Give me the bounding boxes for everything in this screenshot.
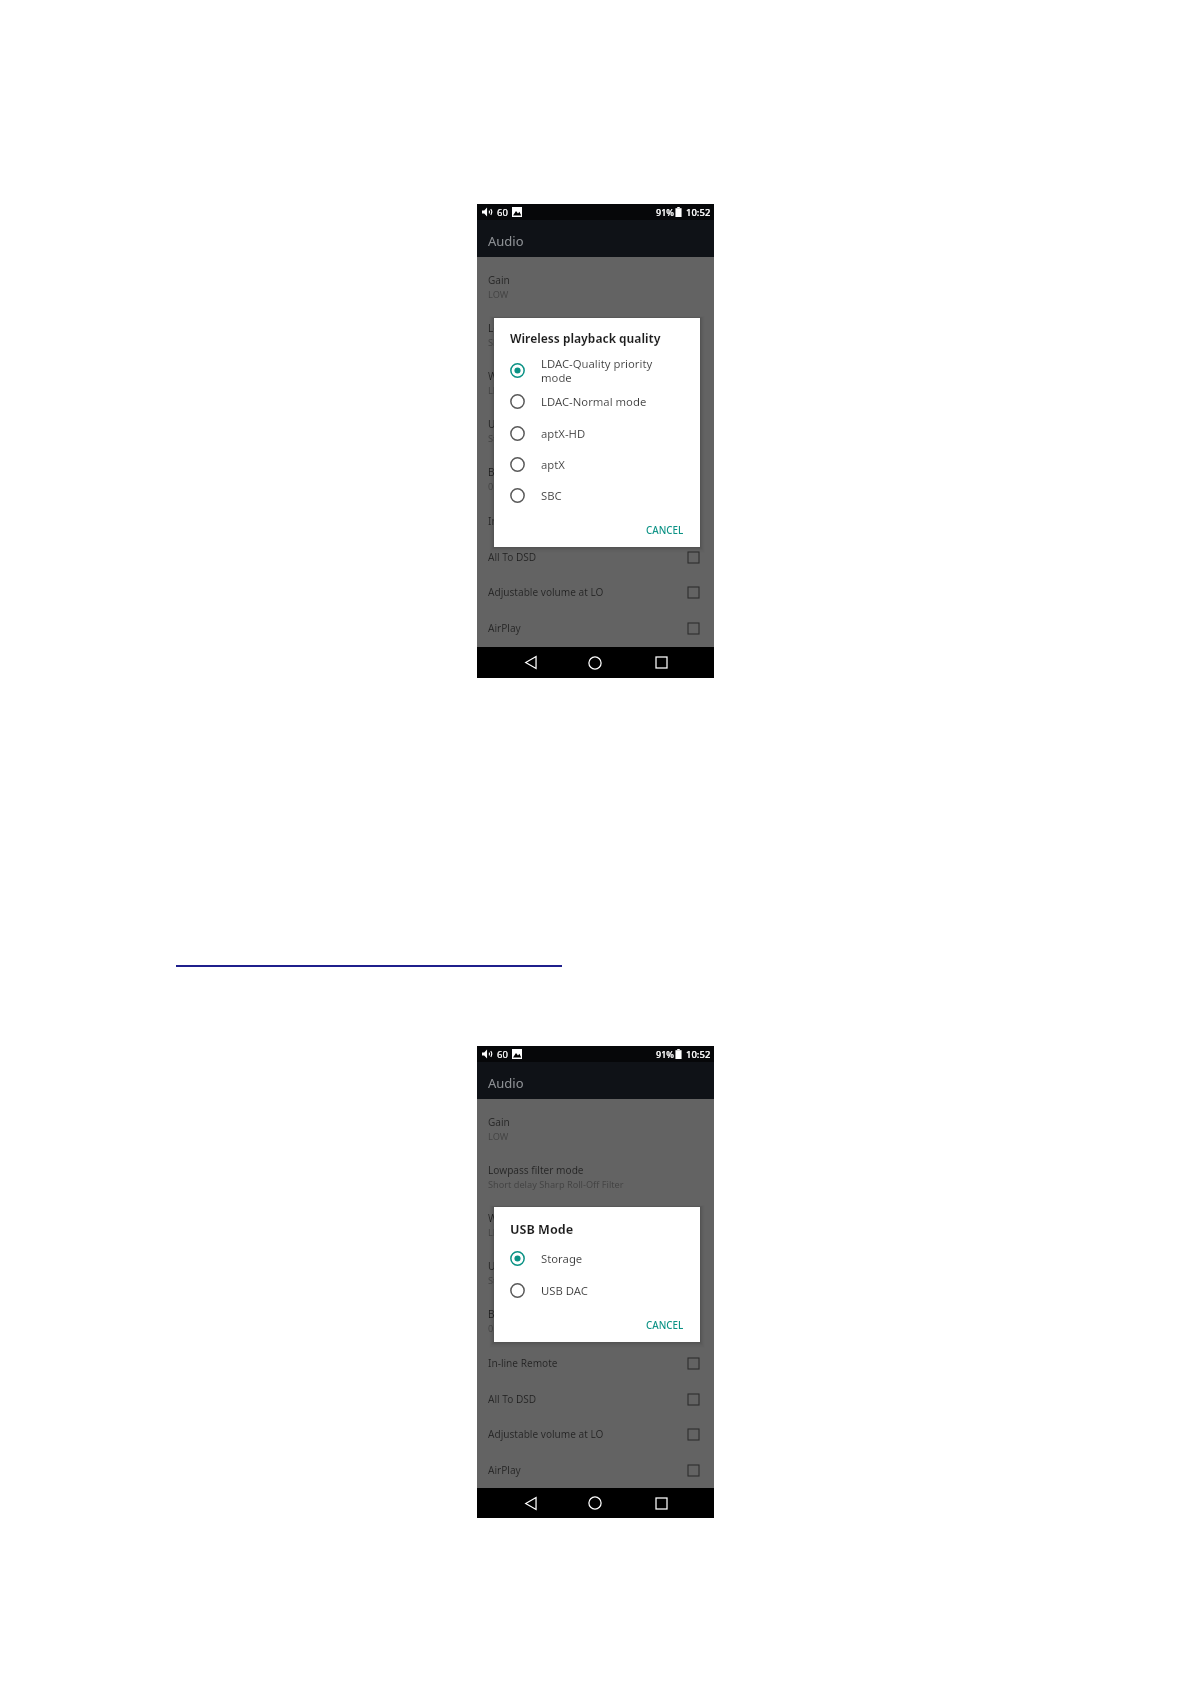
button[interactable]: USB Mode: [477, 1259, 714, 1285]
button[interactable]: Lowpass filter mode: [477, 321, 714, 347]
button[interactable]: aptX: [494, 449, 700, 480]
staticText: 0: [488, 480, 494, 492]
button[interactable]: CANCEL: [642, 1315, 688, 1336]
staticText: USB Mode: [488, 1259, 538, 1273]
staticText: Gain: [488, 273, 510, 287]
button[interactable]: Recents: [648, 1488, 674, 1518]
staticText: aptX-HD: [541, 426, 586, 441]
staticText: Wireless playback quality: [488, 1211, 607, 1225]
staticText: CANCEL: [646, 524, 684, 537]
staticText: LDAC-Quality priority mode: [541, 356, 653, 385]
button[interactable]: Balance: [477, 1307, 714, 1333]
staticText: AirPlay: [488, 621, 521, 635]
button[interactable]: SBC: [494, 480, 700, 511]
staticText: LOW: [488, 1130, 509, 1142]
button[interactable]: Home: [582, 1488, 608, 1518]
button[interactable]: All To DSD: [477, 546, 714, 568]
button[interactable]: Back: [518, 1488, 544, 1518]
button[interactable]: Balance: [477, 465, 714, 491]
staticText: USB DAC: [541, 1283, 588, 1298]
staticText: Balance: [488, 1307, 526, 1321]
staticText: Audio: [488, 1074, 524, 1092]
staticText: LDAC-Quality priority mode: [488, 384, 606, 396]
staticText: Short delay Sharp Roll-Off Filter: [488, 1178, 624, 1190]
staticText: USB Mode: [488, 417, 538, 431]
staticText: 10:52: [686, 206, 711, 219]
staticText: 60: [497, 206, 508, 219]
button[interactable]: Storage: [494, 1242, 700, 1274]
button[interactable]: Wireless playback quality: [477, 1211, 714, 1237]
staticText: AirPlay: [488, 1463, 521, 1477]
button[interactable]: Audio: [477, 220, 714, 257]
staticText: LOW: [488, 288, 509, 300]
staticText: Gain: [488, 1115, 510, 1129]
button[interactable]: AirPlay: [477, 617, 714, 639]
staticText: Wireless playback quality: [488, 369, 607, 383]
button[interactable]: Gain: [477, 1115, 714, 1141]
button[interactable]: CANCEL: [642, 520, 688, 541]
staticText: 60: [497, 1048, 508, 1061]
staticText: 91%: [656, 206, 674, 218]
button[interactable]: AirPlay: [477, 1459, 714, 1481]
staticText: 91%: [656, 1048, 674, 1060]
button[interactable]: LDAC-Quality priority mode: [494, 354, 700, 386]
staticText: Balance: [488, 465, 526, 479]
staticText: 0: [488, 1322, 494, 1334]
staticText: In-line Remote: [488, 1356, 558, 1370]
staticText: Storage: [488, 1274, 522, 1286]
staticText: USB Mode: [510, 1221, 574, 1238]
button[interactable]: Wireless playback quality: [477, 369, 714, 395]
button[interactable]: USB DAC: [494, 1274, 700, 1306]
button[interactable]: Adjustable volume at LO: [477, 581, 714, 603]
button[interactable]: LDAC-Normal mode: [494, 386, 700, 417]
button[interactable]: Recents: [648, 647, 674, 678]
staticText: All To DSD: [488, 550, 537, 564]
staticText: LDAC-Quality priority mode: [488, 1226, 606, 1238]
button[interactable]: aptX-HD: [494, 417, 700, 449]
staticText: SBC: [541, 488, 562, 503]
staticText: Adjustable volume at LO: [488, 1427, 604, 1441]
staticText: Adjustable volume at LO: [488, 585, 604, 599]
button[interactable]: Lowpass filter mode: [477, 1163, 714, 1189]
button[interactable]: Gain: [477, 273, 714, 299]
button[interactable]: Audio: [477, 1062, 714, 1099]
staticText: All To DSD: [488, 1392, 537, 1406]
button[interactable]: Back: [518, 647, 544, 678]
staticText: Storage: [541, 1251, 583, 1266]
staticText: Lowpass filter mode: [488, 1163, 584, 1177]
staticText: LDAC-Normal mode: [541, 394, 647, 409]
staticText: CANCEL: [646, 1319, 684, 1332]
staticText: Audio: [488, 232, 524, 250]
button[interactable]: Home: [582, 647, 608, 678]
button[interactable]: Adjustable volume at LO: [477, 1423, 714, 1445]
staticText: 10:52: [686, 1048, 711, 1061]
staticText: Lowpass filter mode: [488, 321, 584, 335]
staticText: aptX: [541, 457, 565, 472]
button[interactable]: USB Mode: [477, 417, 714, 443]
staticText: In-line Remote: [488, 514, 558, 528]
staticText: Short delay Sharp Roll-Off Filter: [488, 336, 624, 348]
button[interactable]: In-line Remote: [477, 1352, 714, 1374]
staticText: Wireless playback quality: [510, 330, 661, 346]
button[interactable]: In-line Remote: [477, 510, 714, 532]
button[interactable]: All To DSD: [477, 1388, 714, 1410]
staticText: Storage: [488, 432, 522, 444]
